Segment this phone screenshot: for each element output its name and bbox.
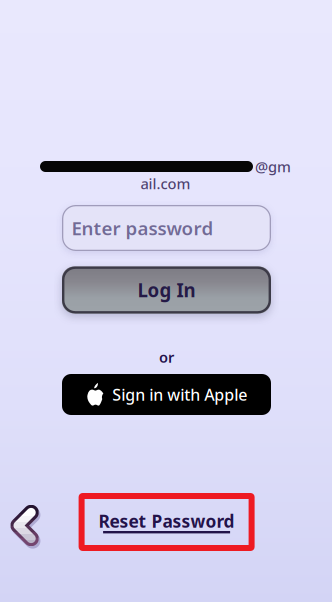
staticText: Reset Password	[99, 509, 235, 532]
button[interactable]: Log In	[62, 266, 271, 313]
button[interactable]: Reset Password	[79, 493, 255, 551]
staticText: or	[159, 347, 174, 367]
staticText: Sign in with Apple	[112, 384, 247, 405]
staticText: Enter password	[71, 216, 213, 240]
staticText: ail.com	[140, 174, 190, 193]
button[interactable]: Enter password	[62, 205, 271, 251]
staticText: @gm	[255, 157, 291, 176]
button[interactable]: Sign in with Apple	[62, 374, 271, 415]
staticText: Log In	[137, 278, 195, 302]
button[interactable]: Back	[7, 501, 43, 549]
